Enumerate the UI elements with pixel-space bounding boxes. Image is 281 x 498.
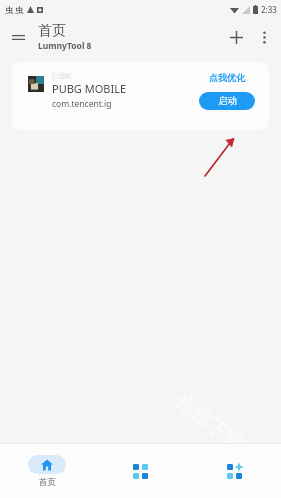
- staticText: LumnyTool 8: [38, 40, 92, 52]
- staticText: 光速下载站: [170, 389, 264, 470]
- staticText: PUBG MOBILE: [52, 81, 127, 96]
- button[interactable]: 点我优化: [207, 71, 247, 84]
- staticText: 2:33: [261, 4, 277, 15]
- button[interactable]: Open navigation menu: [4, 23, 32, 51]
- button[interactable]: More options: [251, 24, 277, 50]
- button[interactable]: 启动: [199, 92, 255, 110]
- staticText: 点我优化: [209, 72, 245, 83]
- staticText: 已适配: [52, 72, 72, 80]
- staticText: 虫 虫: [5, 4, 24, 15]
- staticText: 首页: [39, 477, 56, 488]
- staticText: 首页: [38, 22, 66, 40]
- staticText: 启动: [218, 95, 237, 107]
- button[interactable]: Tools: [187, 444, 281, 498]
- button[interactable]: Modules: [93, 444, 187, 498]
- button[interactable]: 首页: [0, 444, 93, 498]
- button[interactable]: Add: [221, 22, 251, 52]
- button[interactable]: 已适配: [12, 62, 269, 130]
- staticText: com.tencent.ig: [52, 98, 112, 110]
